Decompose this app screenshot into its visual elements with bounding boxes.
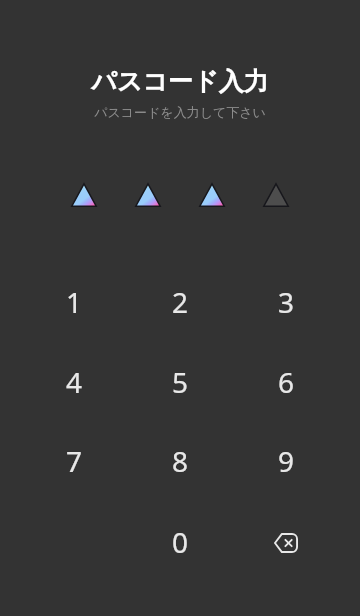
other: 3 of 4 digits entered: [71, 183, 289, 207]
button[interactable]: 6: [233, 342, 339, 422]
button[interactable]: 3: [233, 262, 339, 342]
staticText: 6: [278, 363, 295, 401]
staticText: パスコードを入力して下さい: [94, 104, 266, 120]
staticText: 3: [278, 283, 295, 321]
staticText: 4: [66, 363, 83, 401]
button[interactable]: 1: [21, 262, 127, 342]
button[interactable]: 8: [127, 421, 233, 501]
staticText: 1: [66, 283, 83, 321]
staticText: 7: [66, 442, 83, 480]
button[interactable]: 4: [21, 342, 127, 422]
staticText: 5: [172, 363, 189, 401]
button[interactable]: 5: [127, 342, 233, 422]
button[interactable]: Backspace: [233, 503, 339, 583]
staticText: 9: [278, 442, 295, 480]
button[interactable]: 9: [233, 421, 339, 501]
button[interactable]: 0: [127, 502, 233, 582]
staticText: 0: [172, 523, 189, 561]
staticText: パスコード入力: [91, 66, 269, 97]
button[interactable]: 7: [21, 421, 127, 501]
button[interactable]: 2: [127, 262, 233, 342]
staticText: 8: [172, 442, 189, 480]
staticText: 2: [172, 283, 189, 321]
